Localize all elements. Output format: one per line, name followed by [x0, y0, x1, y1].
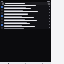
button[interactable]	[0, 20, 51, 23]
button[interactable]	[0, 8, 51, 11]
button[interactable]	[0, 26, 51, 29]
button[interactable]: Home	[0, 62, 17, 64]
button[interactable]: Items	[17, 62, 34, 64]
button[interactable]	[0, 23, 51, 26]
button[interactable]	[0, 17, 51, 20]
button[interactable]	[0, 11, 51, 14]
button[interactable]: Profile	[34, 62, 51, 64]
button[interactable]: Search	[47, 2, 50, 5]
button[interactable]	[0, 14, 51, 17]
button[interactable]: Open navigation menu	[1, 2, 4, 5]
button[interactable]	[0, 5, 51, 8]
